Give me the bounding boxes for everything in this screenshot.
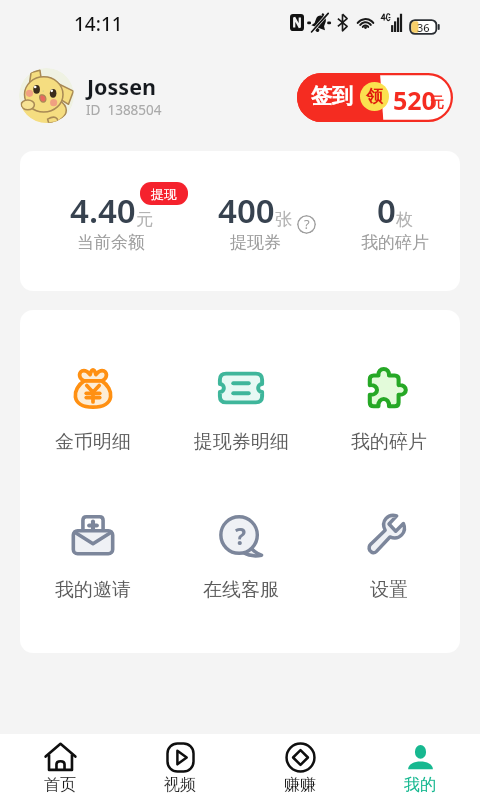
staticText: 我的碎片 xyxy=(361,232,429,253)
staticText: ? xyxy=(235,520,246,551)
staticText: 我的 xyxy=(404,775,436,795)
button[interactable]: 提现券明细 xyxy=(171,364,311,454)
button[interactable]: 设置 xyxy=(319,512,459,602)
staticText: 在线客服 xyxy=(203,578,279,602)
staticText: 0 xyxy=(377,188,396,233)
staticText: 400 xyxy=(218,188,275,233)
button[interactable]: 我的邀请 xyxy=(23,512,163,602)
button[interactable]: 0 xyxy=(323,151,460,291)
button[interactable]: 签到 领 520元 xyxy=(297,73,453,122)
button[interactable]: User avatar xyxy=(19,68,74,123)
staticText: 元 xyxy=(430,94,444,112)
staticText: 当前余额 xyxy=(77,232,145,253)
staticText: 元 xyxy=(136,209,153,230)
staticText: 首页 xyxy=(44,775,76,795)
staticText: 520 xyxy=(393,83,436,117)
staticText: 张 xyxy=(275,209,292,230)
staticText: 签到 xyxy=(311,83,353,109)
button[interactable]: 我的 xyxy=(360,734,480,800)
staticText: 提现券明细 xyxy=(194,430,289,454)
staticText: 提现券 xyxy=(230,232,281,253)
staticText: ? xyxy=(304,215,310,233)
button[interactable]: 首页 xyxy=(0,734,120,800)
staticText: 我的邀请 xyxy=(55,578,131,602)
staticText: 4.40 xyxy=(70,188,136,233)
staticText: 14:11 xyxy=(74,11,123,37)
staticText: 提现 xyxy=(151,186,177,202)
staticText: 赚赚 xyxy=(284,775,316,795)
staticText: 设置 xyxy=(370,578,408,602)
staticText: 我的碎片 xyxy=(351,430,427,454)
staticText: 领 xyxy=(366,86,383,107)
button[interactable]: Help xyxy=(297,215,316,234)
button[interactable]: ? xyxy=(171,512,311,602)
button[interactable]: 金币明细 xyxy=(23,364,163,454)
button[interactable]: 400 xyxy=(183,151,327,291)
button[interactable]: 我的碎片 xyxy=(319,364,459,454)
staticText: 金币明细 xyxy=(55,430,131,454)
staticText: 枚 xyxy=(396,209,413,230)
staticText: Jossen xyxy=(87,72,156,101)
button[interactable]: 赚赚 xyxy=(240,734,360,800)
staticText: 视频 xyxy=(164,775,196,795)
button[interactable]: 4.40 xyxy=(39,151,183,291)
staticText: 36 xyxy=(417,20,430,35)
button[interactable]: 视频 xyxy=(120,734,240,800)
staticText: ID 1388504 xyxy=(86,101,162,119)
